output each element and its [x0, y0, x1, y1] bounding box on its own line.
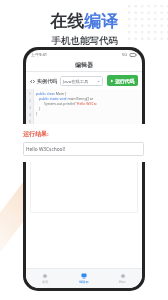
staticText: public static void main(String[] ar [39, 96, 94, 101]
staticText: 首页 [42, 280, 49, 284]
staticText: 5 [29, 119, 31, 124]
button[interactable]: 编辑器 [64, 269, 103, 288]
staticText: 我的 [119, 280, 126, 284]
staticText: 4 [29, 112, 31, 117]
staticText: 编辑器 [79, 280, 89, 284]
button[interactable]: 我的 [103, 269, 142, 288]
staticText: public class Main { [36, 91, 67, 96]
staticText: 3 [29, 105, 31, 110]
button[interactable]: Code [30, 78, 57, 84]
staticText: 手机也能写代码 [51, 35, 118, 47]
button[interactable]: Java在线工具 [60, 76, 103, 86]
staticText: 2 [29, 98, 31, 103]
staticText: 5G [122, 52, 128, 57]
staticText: System.out.println("Hello W3Csc [44, 101, 98, 106]
staticText: } [39, 106, 41, 111]
staticText: 编辑器 [75, 61, 93, 69]
button[interactable]: 运行代码 [107, 75, 138, 86]
staticText: Hello W3Cschool! [26, 146, 66, 153]
staticText: } [36, 111, 38, 116]
staticText: Java在线工具 [63, 78, 89, 84]
staticText: 运行结果: [23, 130, 49, 138]
staticText: 上午9:41 [31, 52, 47, 57]
staticText: 1 [29, 91, 31, 96]
staticText: 实例代码 [37, 78, 57, 84]
staticText: 运行代码 [115, 78, 135, 84]
other: Code [30, 79, 35, 84]
staticText: 在线编译 [50, 11, 118, 32]
button[interactable]: 首页 [26, 269, 64, 288]
